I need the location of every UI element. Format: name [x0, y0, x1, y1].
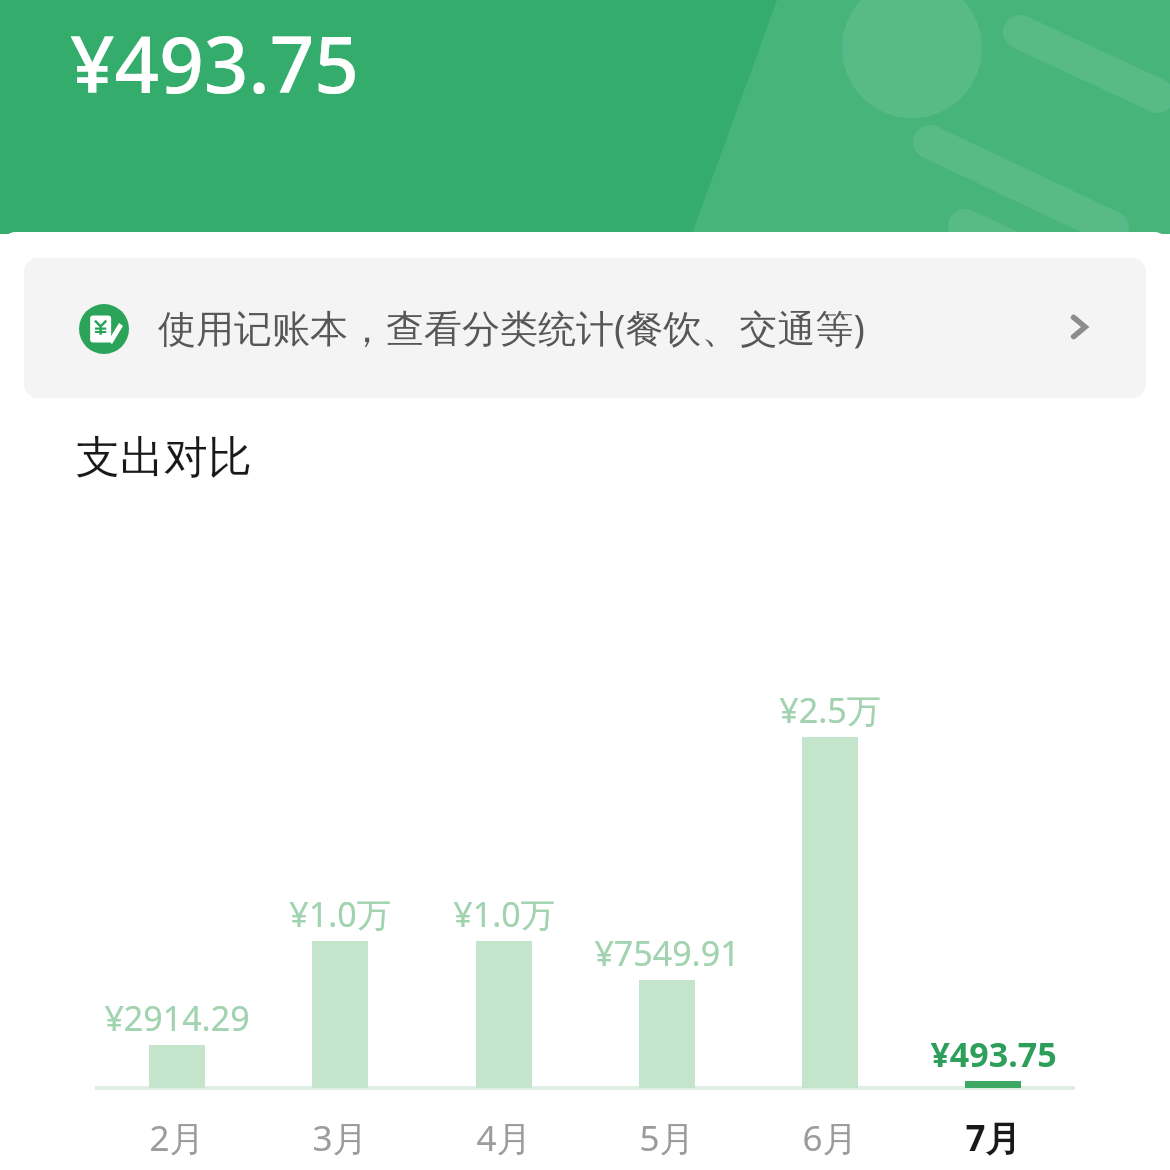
- staticText: 使用记账本，查看分类统计(餐饮、交通等): [158, 301, 865, 353]
- staticText: ¥493.75: [70, 10, 359, 116]
- staticText: 3月: [312, 1114, 368, 1162]
- staticText: ¥1.0万: [289, 891, 391, 937]
- staticText: 7月: [965, 1114, 1021, 1162]
- other: 查看分类统计: [1062, 310, 1096, 344]
- staticText: 6月: [802, 1114, 858, 1162]
- staticText: ¥2.5万: [779, 687, 881, 733]
- staticText: 支出对比: [76, 430, 252, 485]
- staticText: 5月: [639, 1114, 695, 1162]
- staticText: 2月: [149, 1114, 205, 1162]
- staticText: ¥1.0万: [453, 891, 555, 937]
- staticText: ¥2914.29: [104, 995, 250, 1041]
- button[interactable]: 使用记账本，查看分类统计(餐饮、交通等): [24, 258, 1146, 398]
- staticText: 4月: [476, 1114, 532, 1162]
- staticText: ¥7549.91: [594, 930, 740, 976]
- staticText: ¥493.75: [930, 1031, 1057, 1077]
